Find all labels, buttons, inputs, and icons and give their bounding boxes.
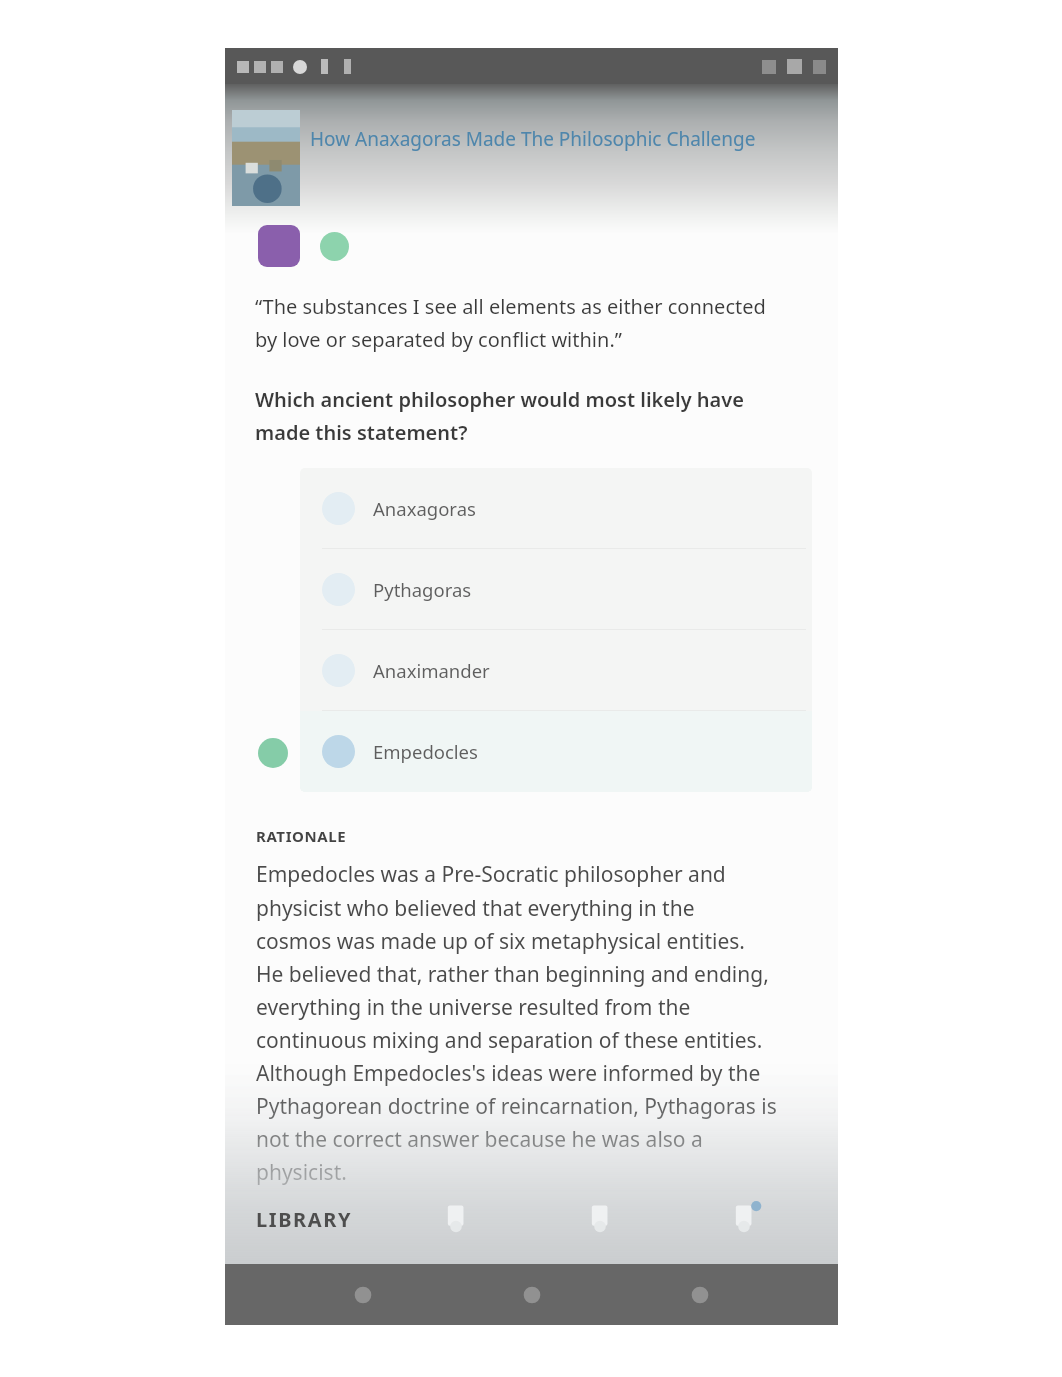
staticText: “The substances I see all elements as ei… [255, 293, 766, 353]
button[interactable]: How Anaxagoras Made The Philosophic Chal… [225, 110, 838, 206]
button[interactable]: Correct answer [258, 738, 288, 768]
staticText: Empedocles [373, 739, 478, 764]
staticText: Pythagoras [373, 577, 472, 602]
button[interactable]: Empedocles [300, 711, 812, 792]
button[interactable]: Bookmark [430, 1193, 482, 1245]
staticText: LIBRARY [256, 1206, 353, 1233]
button[interactable]: Notes [574, 1193, 626, 1245]
button[interactable]: Home [502, 1265, 562, 1325]
button[interactable]: Recents [670, 1265, 730, 1325]
button[interactable]: Share [718, 1193, 770, 1245]
button[interactable]: LIBRARY [225, 1206, 405, 1233]
button[interactable]: Pythagoras [300, 549, 812, 630]
staticText: Empedocles was a Pre-Socratic philosophe… [256, 860, 777, 1186]
staticText: RATIONALE [256, 826, 347, 846]
button[interactable]: Anaximander [300, 630, 812, 711]
button[interactable]: Back [333, 1265, 393, 1325]
button[interactable]: Correct [320, 232, 349, 261]
staticText: Anaximander [373, 658, 490, 683]
staticText: Anaxagoras [373, 496, 476, 521]
button[interactable]: Flashcards [258, 225, 300, 267]
staticText: How Anaxagoras Made The Philosophic Chal… [310, 126, 756, 152]
staticText: Which ancient philosopher would most lik… [255, 386, 744, 446]
button[interactable]: Anaxagoras [300, 468, 812, 549]
